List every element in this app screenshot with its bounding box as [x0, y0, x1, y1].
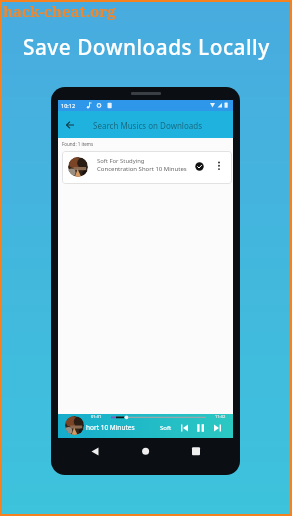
- button[interactable]: [87, 447, 103, 463]
- staticText: Search Musics on Downloads: [93, 120, 203, 131]
- staticText: Found: 1 items: [62, 141, 94, 147]
- button[interactable]: [212, 423, 223, 433]
- button[interactable]: [215, 160, 223, 174]
- button[interactable]: [179, 423, 190, 433]
- button[interactable]: Soft For Studying: [62, 151, 232, 184]
- staticText: 11:02: [215, 414, 226, 419]
- staticText: Concentration Short 10 Minutes: [97, 165, 187, 173]
- button[interactable]: 01:01: [58, 414, 233, 438]
- button[interactable]: [189, 447, 205, 463]
- staticText: Soft: [160, 424, 172, 432]
- staticText: 01:01: [91, 414, 102, 419]
- staticText: Soft For Studying: [97, 157, 145, 165]
- staticText: 10:12: [61, 102, 76, 109]
- button[interactable]: [138, 447, 154, 463]
- staticText: hort 10 Minutes: [86, 423, 135, 432]
- button[interactable]: [195, 162, 204, 171]
- button[interactable]: [63, 119, 77, 131]
- button[interactable]: [195, 423, 206, 433]
- staticText: Save Downloads Locally: [23, 33, 270, 61]
- staticText: hack-cheat.org: [3, 1, 116, 21]
